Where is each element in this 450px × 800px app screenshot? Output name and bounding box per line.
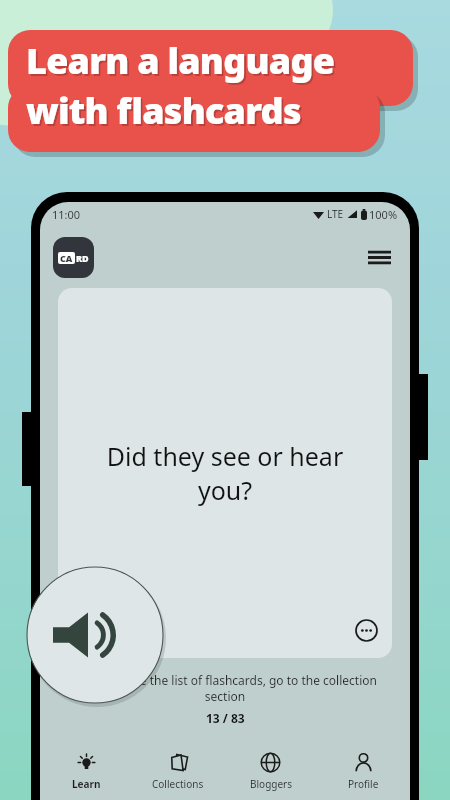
button[interactable]: Collections (132, 742, 224, 800)
staticText: Collections (152, 777, 204, 791)
button[interactable]: More options (355, 619, 378, 642)
staticText: 11:00 (52, 207, 81, 222)
button[interactable]: Play pronunciation (25, 565, 165, 705)
staticText: RD (76, 252, 89, 264)
staticText: 100% (369, 207, 398, 222)
staticText: Profile (348, 777, 379, 791)
button[interactable]: Did they see or hear you? (58, 288, 392, 658)
staticText: Learn (72, 777, 101, 791)
button[interactable]: CARD logo (53, 237, 94, 278)
staticText: Bloggers (250, 777, 292, 791)
button[interactable]: Learn (40, 742, 132, 800)
button[interactable]: Bloggers (224, 742, 317, 800)
staticText: Learn a language (26, 36, 335, 85)
staticText: Learn a language (28, 38, 337, 87)
button[interactable]: Profile (317, 742, 410, 800)
staticText: LTE (327, 207, 344, 221)
staticText: with flashcards (26, 86, 301, 135)
button[interactable]: Menu (361, 239, 397, 275)
staticText: Did they see or hear you? (78, 439, 372, 507)
staticText: 13 / 83 (206, 710, 245, 726)
staticText: To customize the list of flashcards, go … (68, 672, 382, 704)
staticText: with flashcards (28, 88, 303, 137)
staticText: CA (60, 252, 73, 264)
